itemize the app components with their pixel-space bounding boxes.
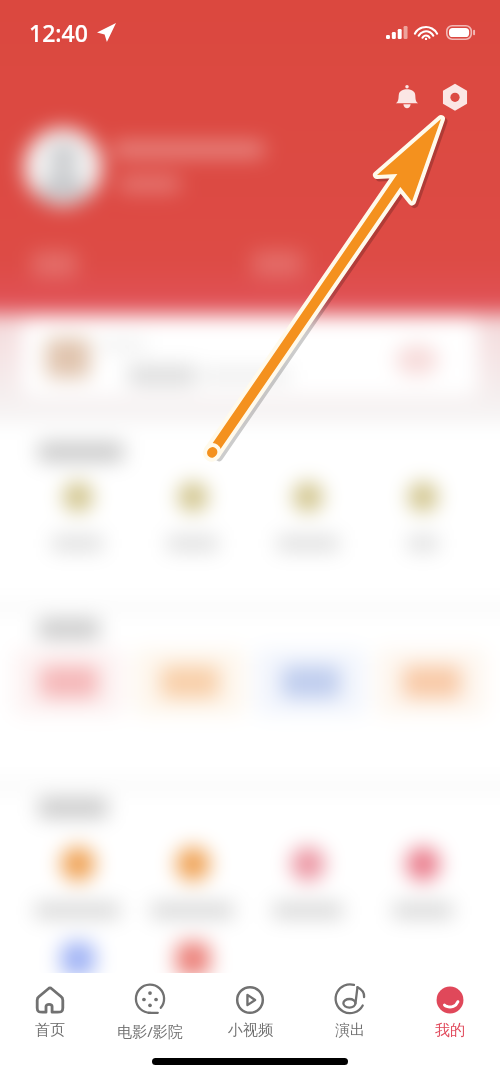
staticText: 演出 xyxy=(335,1021,365,1040)
button[interactable]: Notifications xyxy=(384,74,430,120)
button[interactable] xyxy=(135,847,250,918)
staticText: 我的 xyxy=(435,1021,465,1040)
button[interactable]: 小视频 xyxy=(200,973,300,1051)
button[interactable]: 首页 xyxy=(0,973,100,1051)
button[interactable] xyxy=(13,649,124,715)
button[interactable] xyxy=(376,649,487,715)
button[interactable] xyxy=(250,482,365,551)
staticText: 小视频 xyxy=(228,1021,273,1040)
button[interactable] xyxy=(20,847,135,918)
button[interactable] xyxy=(134,649,245,715)
button[interactable] xyxy=(365,482,480,551)
staticText: 电影/影院 xyxy=(117,1021,183,1041)
button[interactable] xyxy=(250,847,365,918)
button[interactable] xyxy=(20,482,135,551)
button[interactable] xyxy=(365,847,480,918)
button[interactable] xyxy=(22,318,478,396)
staticText: 首页 xyxy=(35,1021,65,1040)
staticText: 12:40 xyxy=(29,17,88,48)
button[interactable] xyxy=(135,482,250,551)
button[interactable] xyxy=(396,345,438,375)
button[interactable] xyxy=(24,128,102,206)
button[interactable]: 电影/影院 xyxy=(100,973,200,1051)
button[interactable]: 我的 xyxy=(400,973,500,1051)
button[interactable]: Settings xyxy=(432,74,478,120)
button[interactable] xyxy=(255,649,366,715)
button[interactable]: 演出 xyxy=(300,973,400,1051)
